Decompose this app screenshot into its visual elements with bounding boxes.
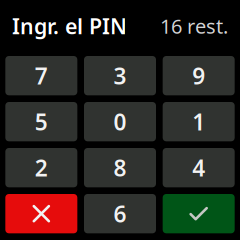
- staticText: 0: [113, 107, 126, 137]
- button[interactable]: 3: [84, 56, 156, 95]
- staticText: Ingr. el PIN: [12, 12, 127, 40]
- staticText: 7: [35, 61, 48, 91]
- button[interactable]: 5: [5, 102, 77, 141]
- staticText: 3: [113, 61, 126, 91]
- staticText: 2: [35, 153, 48, 183]
- button[interactable]: 8: [84, 148, 156, 187]
- staticText: 9: [192, 61, 205, 91]
- button[interactable]: 6: [84, 194, 156, 233]
- button[interactable]: 9: [163, 56, 235, 95]
- staticText: 8: [113, 153, 126, 183]
- button[interactable]: 1: [163, 102, 235, 141]
- staticText: 4: [192, 153, 205, 183]
- button[interactable]: Delete: [5, 194, 77, 233]
- staticText: 16 rest.: [160, 13, 228, 39]
- button[interactable]: 4: [163, 148, 235, 187]
- staticText: 1: [192, 107, 205, 137]
- button[interactable]: 7: [5, 56, 77, 95]
- button[interactable]: 2: [5, 148, 77, 187]
- staticText: 5: [35, 107, 48, 137]
- button[interactable]: 0: [84, 102, 156, 141]
- staticText: 6: [113, 199, 126, 229]
- button[interactable]: Confirm: [163, 194, 235, 233]
